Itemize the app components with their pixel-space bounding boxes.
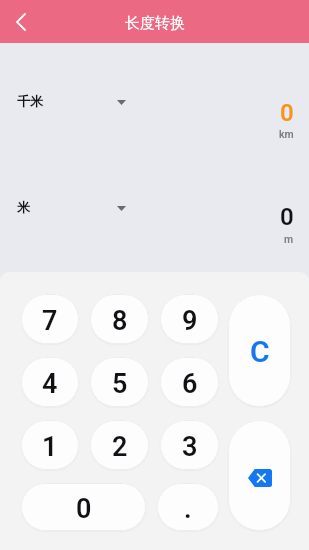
button[interactable]: 4 — [21, 357, 79, 407]
button[interactable]: 6 — [160, 357, 219, 407]
button[interactable]: 3 — [160, 420, 219, 470]
staticText: 1 — [42, 431, 58, 463]
staticText: 0 — [280, 99, 294, 127]
button[interactable]: 千米 — [13, 88, 133, 114]
button[interactable]: 5 — [90, 357, 149, 407]
button[interactable]: Clear — [228, 294, 291, 407]
staticText: C — [250, 334, 270, 369]
staticText: 长度转换 — [125, 14, 185, 33]
button[interactable]: 1 — [21, 420, 79, 470]
button[interactable]: 2 — [90, 420, 149, 470]
staticText: 千米 — [17, 93, 43, 109]
button[interactable]: . — [157, 483, 219, 531]
staticText: 米 — [17, 199, 30, 215]
staticText: 3 — [182, 431, 198, 463]
staticText: 9 — [182, 305, 198, 337]
staticText: 0 — [76, 493, 92, 525]
button[interactable]: 米 — [13, 194, 133, 220]
staticText: . — [184, 493, 192, 525]
staticText: m — [284, 233, 294, 245]
staticText: 2 — [112, 431, 128, 463]
button[interactable]: 0 — [21, 483, 146, 531]
staticText: 4 — [42, 368, 58, 400]
staticText: km — [279, 128, 294, 140]
button[interactable]: Delete — [228, 420, 291, 531]
staticText: 0 — [280, 203, 294, 231]
staticText: 7 — [42, 305, 58, 337]
button[interactable]: Back — [0, 0, 41, 43]
button[interactable]: 7 — [21, 294, 79, 344]
staticText: 6 — [182, 368, 198, 400]
staticText: 5 — [112, 368, 128, 400]
staticText: 8 — [112, 305, 128, 337]
button[interactable]: 8 — [90, 294, 149, 344]
button[interactable]: 9 — [160, 294, 219, 344]
